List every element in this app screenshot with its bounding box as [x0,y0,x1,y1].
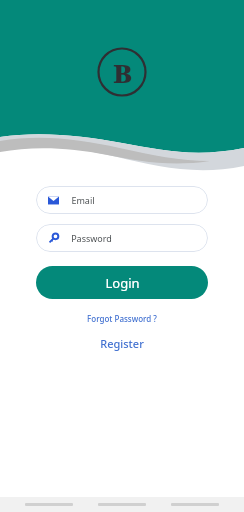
other: Password [48,233,59,244]
button[interactable]: Register [94,334,150,353]
button[interactable]: Login [36,266,208,299]
staticText: Register [100,336,144,351]
staticText: Password [71,232,112,244]
button[interactable]: Email [36,186,208,214]
staticText: Email [71,194,95,206]
staticText: B [113,55,132,90]
other: Email [48,195,59,206]
staticText: Forgot Password ? [87,313,157,324]
button[interactable]: Forgot Password ? [81,311,163,326]
staticText: Login [105,274,140,292]
button[interactable]: Password [36,224,208,252]
